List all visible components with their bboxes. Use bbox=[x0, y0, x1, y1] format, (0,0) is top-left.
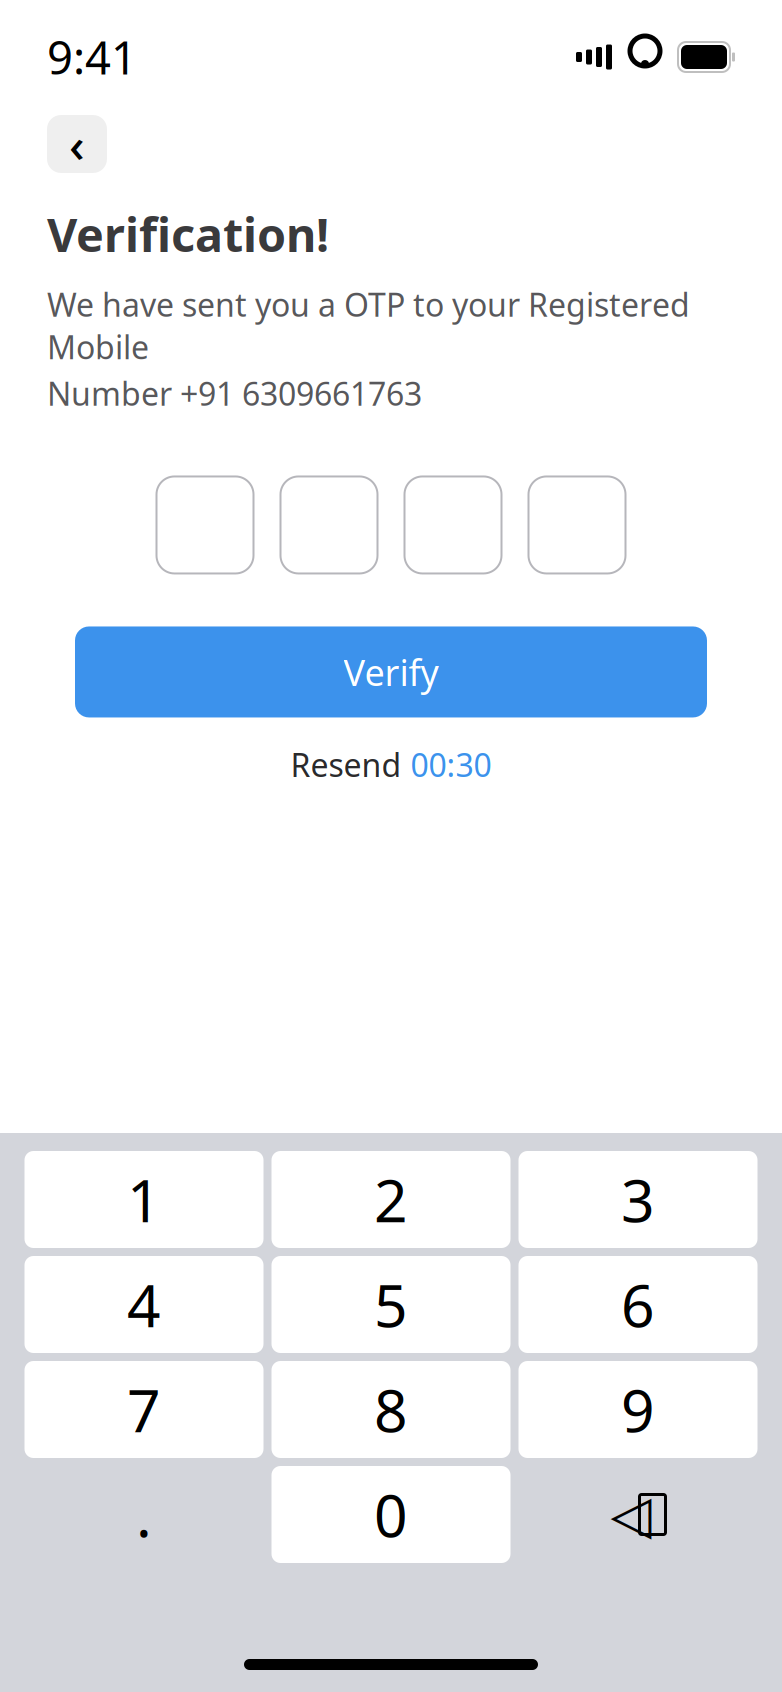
button[interactable]: 2 bbox=[271, 1151, 510, 1248]
staticText: 7 bbox=[127, 1370, 161, 1448]
staticText: Verification! bbox=[47, 203, 329, 265]
staticText: . bbox=[136, 1475, 152, 1553]
staticText: ‹ bbox=[69, 112, 85, 176]
button[interactable]: 7 bbox=[24, 1361, 263, 1458]
staticText: 9:41 bbox=[47, 27, 137, 87]
staticText: 3 bbox=[621, 1160, 655, 1238]
button[interactable]: 3 bbox=[518, 1151, 757, 1248]
staticText: 8 bbox=[374, 1370, 408, 1448]
staticText: ◁ bbox=[610, 1484, 651, 1545]
staticText: Number +91 6309661763 bbox=[47, 372, 422, 414]
staticText: We have sent you a OTP to your Registere… bbox=[47, 283, 690, 368]
button[interactable]: Verify bbox=[75, 626, 707, 717]
button[interactable]: Resend bbox=[280, 737, 501, 792]
staticText: 0 bbox=[374, 1475, 408, 1553]
staticText: 4 bbox=[127, 1265, 161, 1343]
button[interactable]: 9 bbox=[518, 1361, 757, 1458]
staticText: Verify bbox=[343, 648, 438, 696]
button[interactable]: 8 bbox=[271, 1361, 510, 1458]
staticText: 00:30 bbox=[410, 743, 491, 786]
button[interactable]: 5 bbox=[271, 1256, 510, 1353]
button[interactable]: Delete bbox=[518, 1466, 757, 1563]
staticText: 5 bbox=[374, 1265, 408, 1343]
button[interactable]: 1 bbox=[24, 1151, 263, 1248]
button[interactable]: 6 bbox=[518, 1256, 757, 1353]
staticText: 9 bbox=[621, 1370, 655, 1448]
staticText: 2 bbox=[374, 1160, 408, 1238]
staticText: Resend bbox=[290, 743, 401, 786]
button[interactable]: Back bbox=[47, 115, 107, 173]
button[interactable]: 0 bbox=[271, 1466, 510, 1563]
button[interactable]: 4 bbox=[24, 1256, 263, 1353]
staticText: 1 bbox=[127, 1160, 161, 1238]
staticText: 6 bbox=[621, 1265, 655, 1343]
button[interactable]: Decimal point bbox=[24, 1466, 263, 1563]
